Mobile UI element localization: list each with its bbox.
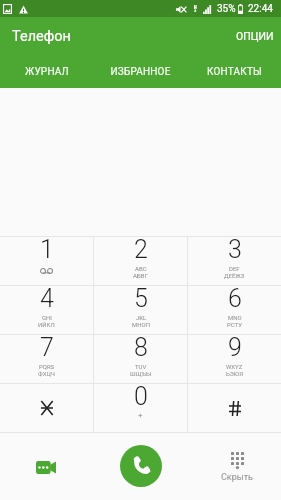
staticText: TUV [135,363,147,370]
button[interactable]: ИЗБРАННОЕ [93,55,187,88]
button[interactable]: 5 [94,286,187,334]
staticText: 8 [134,333,148,362]
button[interactable]: 1 [0,237,93,285]
staticText: 5 [134,284,148,313]
staticText: КОНТАКТЫ [207,66,262,78]
staticText: 0 [134,382,148,411]
staticText: 2 [134,235,148,264]
button[interactable]: КОНТАКТЫ [187,55,281,88]
staticText: 6 [228,284,242,313]
staticText: ДЕЁЖЗ [224,272,245,279]
staticText: GHI [42,314,52,321]
button[interactable] [0,384,93,432]
staticText: Телефон [12,28,71,45]
staticText: ИЙКЛ [38,321,55,328]
staticText: АБВГ [133,272,148,279]
staticText: ЖУРНАЛ [25,66,69,78]
button[interactable] [188,384,281,432]
button[interactable]: 0 [94,384,187,432]
staticText: 7 [40,333,54,362]
button[interactable]: 9 [188,335,281,383]
staticText: 3 [228,235,242,264]
button[interactable]: Video call [16,442,76,492]
staticText: MNO [228,314,242,321]
button[interactable]: Call [120,445,162,487]
staticText: 4 [40,284,54,313]
staticText: 35% [217,3,236,15]
staticText: WXYZ [226,363,243,370]
staticText: PQRS [39,363,55,370]
button[interactable]: 4 [0,286,93,334]
staticText: ИЗБРАННОЕ [110,66,171,78]
staticText: 1 [40,235,54,264]
staticText: РСТУ [227,321,242,328]
button[interactable]: 6 [188,286,281,334]
staticText: ABC [135,265,147,272]
button[interactable]: 7 [0,335,93,383]
staticText: Скрыть [221,472,253,483]
staticText: ШЩЪЫ [130,370,152,377]
staticText: ЬЭЮЯ [226,370,243,377]
staticText: ОПЦИИ [236,30,274,42]
staticText: 22:44 [248,3,273,15]
staticText: ФХЦЧ [38,370,55,377]
button[interactable]: 8 [94,335,187,383]
button[interactable]: 3 [188,237,281,285]
button[interactable]: ОПЦИИ [227,17,281,55]
staticText: МНОП [132,321,150,328]
staticText: DEF [229,265,240,272]
staticText: + [138,411,143,420]
button[interactable]: 2 [94,237,187,285]
button[interactable]: ЖУРНАЛ [0,55,93,88]
staticText: JKL [136,314,147,321]
button[interactable]: Скрыть [206,441,268,491]
staticText: 9 [228,333,242,362]
